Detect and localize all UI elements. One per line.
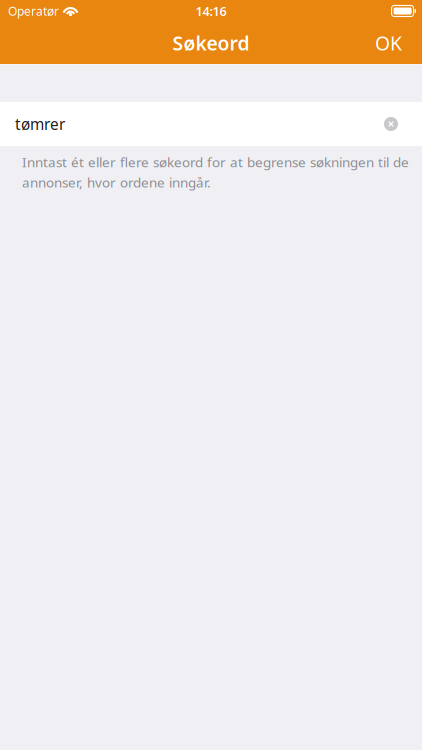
button[interactable]: Clear text	[374, 107, 408, 141]
staticText: Operatør	[8, 3, 59, 19]
staticText: Søkeord	[172, 30, 249, 56]
button[interactable]: tømrer	[0, 102, 422, 146]
staticText: OK	[375, 30, 402, 56]
staticText: 14:16	[195, 3, 226, 19]
staticText: annonser, hvor ordene inngår.	[22, 173, 211, 191]
button[interactable]: OK	[365, 22, 412, 64]
staticText: Inntast ét eller flere søkeord for at be…	[22, 153, 409, 171]
staticText: tømrer	[15, 114, 65, 134]
